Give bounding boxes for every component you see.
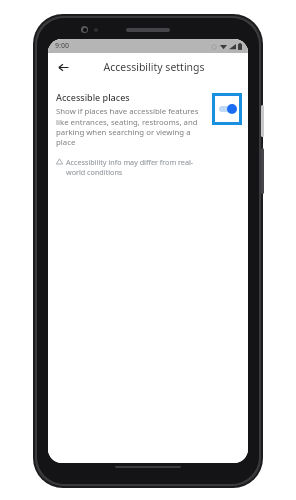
staticText: Accessible places	[56, 91, 130, 103]
button[interactable]: Accessible places	[48, 85, 248, 177]
button[interactable]: Accessible places toggle	[215, 96, 239, 122]
button[interactable]: Back	[52, 56, 74, 78]
staticText: Accessibility info may differ from real-…	[66, 157, 208, 177]
staticText: 9:00	[55, 41, 69, 51]
staticText: Accessibility settings	[103, 60, 205, 74]
staticText: Show if places have accessible features …	[56, 106, 208, 148]
